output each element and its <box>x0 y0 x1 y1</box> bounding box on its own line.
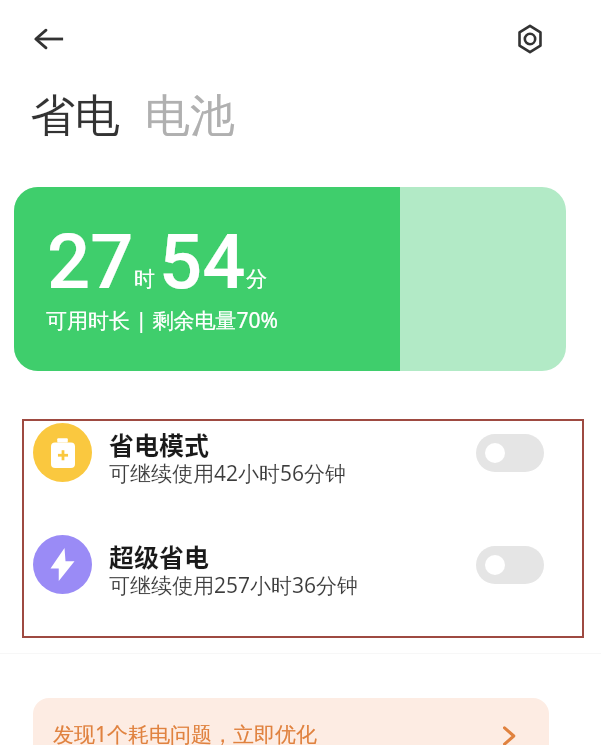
button[interactable]: 省电模式 <box>22 398 584 507</box>
button[interactable]: 电池 <box>145 88 235 145</box>
staticText: 27 <box>47 217 134 306</box>
button[interactable]: 发现1个耗电问题，立即优化 <box>33 698 549 745</box>
staticText: 时 <box>134 266 155 292</box>
staticText: 54 <box>159 217 246 306</box>
button[interactable]: 省电 <box>30 88 120 145</box>
staticText: 发现1个耗电问题，立即优化 <box>53 720 318 745</box>
staticText: 电池 <box>145 88 235 145</box>
staticText: 省电模式 <box>109 426 210 462</box>
button[interactable]: Toggle <box>476 434 544 472</box>
staticText: 超级省电 <box>109 538 210 574</box>
staticText: 可继续使用257小时36分钟 <box>109 571 359 600</box>
button[interactable]: Settings <box>508 17 551 60</box>
button[interactable]: 超级省电 <box>22 510 584 619</box>
staticText: 可继续使用42小时56分钟 <box>109 459 347 488</box>
staticText: 省电 <box>30 88 120 145</box>
staticText: 可用时长 | 剩余电量70% <box>46 306 278 335</box>
staticText: 分 <box>246 266 267 292</box>
button[interactable]: Toggle <box>476 546 544 584</box>
button[interactable]: Back <box>27 17 71 61</box>
button[interactable]: 27 <box>14 187 566 371</box>
